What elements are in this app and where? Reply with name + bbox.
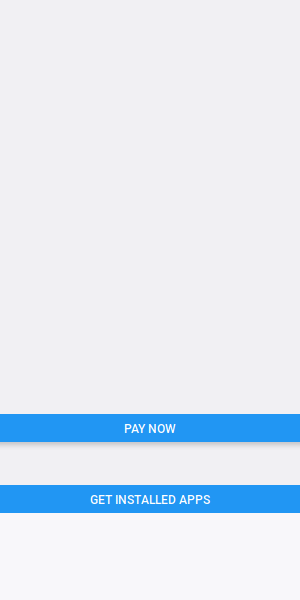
button[interactable]: PAY NOW bbox=[0, 414, 300, 442]
staticText: GET INSTALLED APPS bbox=[90, 493, 210, 507]
staticText: PAY NOW bbox=[124, 422, 176, 436]
button[interactable]: GET INSTALLED APPS bbox=[0, 485, 300, 513]
